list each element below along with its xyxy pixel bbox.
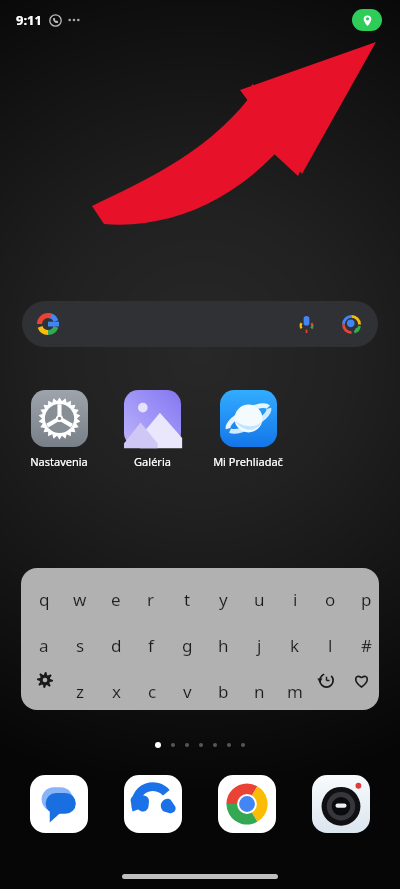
button[interactable]: Messages xyxy=(30,775,88,833)
staticText: z xyxy=(76,680,84,703)
staticText: p xyxy=(361,588,372,611)
button[interactable]: h xyxy=(207,630,239,660)
staticText: b xyxy=(218,680,229,703)
button[interactable]: g xyxy=(171,630,203,660)
button[interactable]: o xyxy=(314,584,346,614)
staticText: m xyxy=(287,680,303,703)
staticText: t xyxy=(184,588,191,611)
button[interactable]: Favorites xyxy=(345,664,377,696)
button[interactable]: Nastavenia xyxy=(13,390,105,469)
button[interactable]: a xyxy=(28,630,60,660)
staticText: n xyxy=(254,680,265,703)
button[interactable]: l xyxy=(314,630,346,660)
button[interactable]: m xyxy=(279,676,311,706)
button[interactable]: y xyxy=(207,584,239,614)
button[interactable]: Chrome xyxy=(218,775,276,833)
button[interactable]: n xyxy=(243,676,275,706)
staticText: c xyxy=(148,680,157,703)
staticText: Nastavenia xyxy=(30,454,88,469)
button[interactable]: q xyxy=(21,568,379,710)
staticText: x xyxy=(112,680,121,703)
staticText: v xyxy=(183,680,192,703)
button[interactable]: u xyxy=(243,584,275,614)
button[interactable]: Mi Prehliadač xyxy=(202,390,294,469)
button[interactable]: z xyxy=(64,676,96,706)
staticText: f xyxy=(148,634,154,657)
staticText: 9:11 xyxy=(16,11,42,29)
button[interactable]: Google Lens xyxy=(334,307,368,341)
staticText: l xyxy=(328,634,333,657)
button[interactable]: d xyxy=(100,630,132,660)
button[interactable]: x xyxy=(100,676,132,706)
button[interactable]: c xyxy=(136,676,168,706)
button[interactable]: k xyxy=(279,630,311,660)
staticText: Galéria xyxy=(134,454,171,469)
button[interactable]: Voice search xyxy=(289,307,323,341)
button[interactable]: Clipboard history xyxy=(310,664,342,696)
staticText: # xyxy=(361,634,372,657)
button[interactable]: e xyxy=(100,584,132,614)
staticText: r xyxy=(147,588,155,611)
staticText: e xyxy=(111,588,121,611)
button[interactable]: Search xyxy=(22,301,378,347)
button[interactable]: b xyxy=(207,676,239,706)
button[interactable]: Keyboard settings xyxy=(29,664,61,696)
button[interactable]: # xyxy=(350,630,379,660)
button[interactable]: Galéria xyxy=(106,390,198,469)
staticText: h xyxy=(218,634,229,657)
staticText: g xyxy=(182,634,193,657)
button[interactable]: p xyxy=(350,584,379,614)
staticText: d xyxy=(111,634,122,657)
button[interactable]: i xyxy=(279,584,311,614)
button[interactable]: r xyxy=(135,584,167,614)
button[interactable]: t xyxy=(171,584,203,614)
button[interactable]: s xyxy=(64,630,96,660)
staticText: o xyxy=(325,588,336,611)
button[interactable]: j xyxy=(243,630,275,660)
staticText: j xyxy=(257,634,262,657)
staticText: k xyxy=(290,634,300,657)
button[interactable]: Phone xyxy=(124,775,182,833)
button[interactable]: w xyxy=(64,584,96,614)
staticText: w xyxy=(73,588,87,611)
staticText: a xyxy=(39,634,49,657)
staticText: i xyxy=(293,588,298,611)
staticText: u xyxy=(254,588,265,611)
staticText: q xyxy=(39,588,50,611)
staticText: Mi Prehliadač xyxy=(213,454,283,469)
button[interactable]: f xyxy=(135,630,167,660)
button[interactable]: Camera xyxy=(312,775,370,833)
button[interactable]: Location active xyxy=(352,9,382,31)
staticText: y xyxy=(219,588,228,611)
button[interactable]: v xyxy=(171,676,203,706)
button[interactable]: q xyxy=(28,584,60,614)
staticText: s xyxy=(76,634,85,657)
